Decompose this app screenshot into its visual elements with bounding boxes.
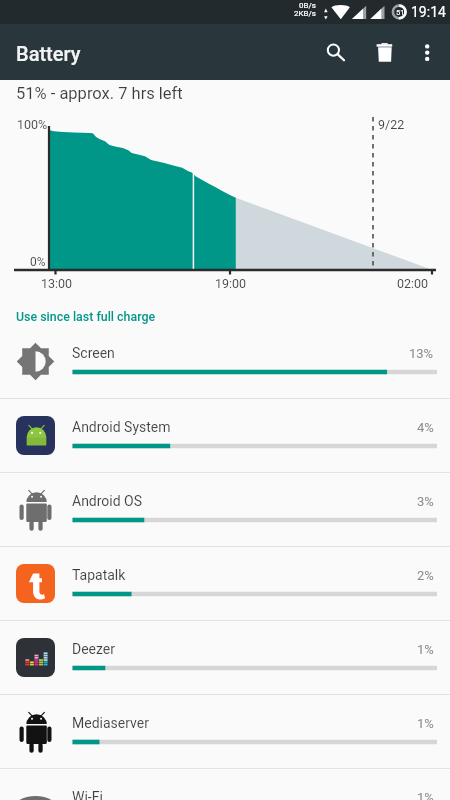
button[interactable]: More options — [402, 28, 450, 76]
staticText: Android System — [72, 419, 171, 435]
staticText: 51% - approx. 7 hrs left — [16, 84, 183, 103]
staticText: 100% — [17, 117, 48, 132]
staticText: Wi-Fi — [72, 789, 103, 800]
staticText: 19:14 — [411, 4, 446, 20]
staticText: Mediaserver — [72, 715, 149, 731]
staticText: 3% — [417, 494, 434, 509]
button[interactable]: Android OS — [0, 473, 450, 547]
staticText: Battery — [16, 42, 81, 65]
button[interactable]: Delete — [361, 28, 409, 76]
staticText: 0% — [30, 255, 46, 269]
staticText: 19:00 — [215, 276, 247, 291]
staticText: 02:00 — [397, 276, 429, 291]
staticText: 0B/s — [299, 1, 316, 10]
staticText: Screen — [72, 345, 115, 361]
button[interactable]: Wi-Fi — [0, 769, 450, 800]
staticText: Deezer — [72, 641, 116, 657]
button[interactable]: Deezer — [0, 621, 450, 695]
staticText: 9/22 — [378, 117, 405, 132]
staticText: 13% — [409, 346, 434, 361]
staticText: Tapatalk — [72, 567, 126, 583]
staticText: 1% — [417, 716, 434, 731]
staticText: Android OS — [72, 493, 143, 509]
staticText: 51 — [396, 8, 405, 17]
button[interactable]: Search — [311, 28, 359, 76]
staticText: Use since last full charge — [16, 309, 156, 324]
staticText: 1% — [417, 642, 434, 657]
button[interactable]: Android System — [0, 399, 450, 473]
button[interactable]: Mediaserver — [0, 695, 450, 769]
button[interactable]: Screen — [0, 325, 450, 399]
staticText: 4% — [417, 420, 434, 435]
staticText: 1% — [417, 790, 434, 800]
button[interactable]: Tapatalk — [0, 547, 450, 621]
staticText: 2% — [417, 568, 434, 583]
staticText: 13:00 — [41, 276, 73, 291]
staticText: 2KB/s — [294, 9, 316, 18]
